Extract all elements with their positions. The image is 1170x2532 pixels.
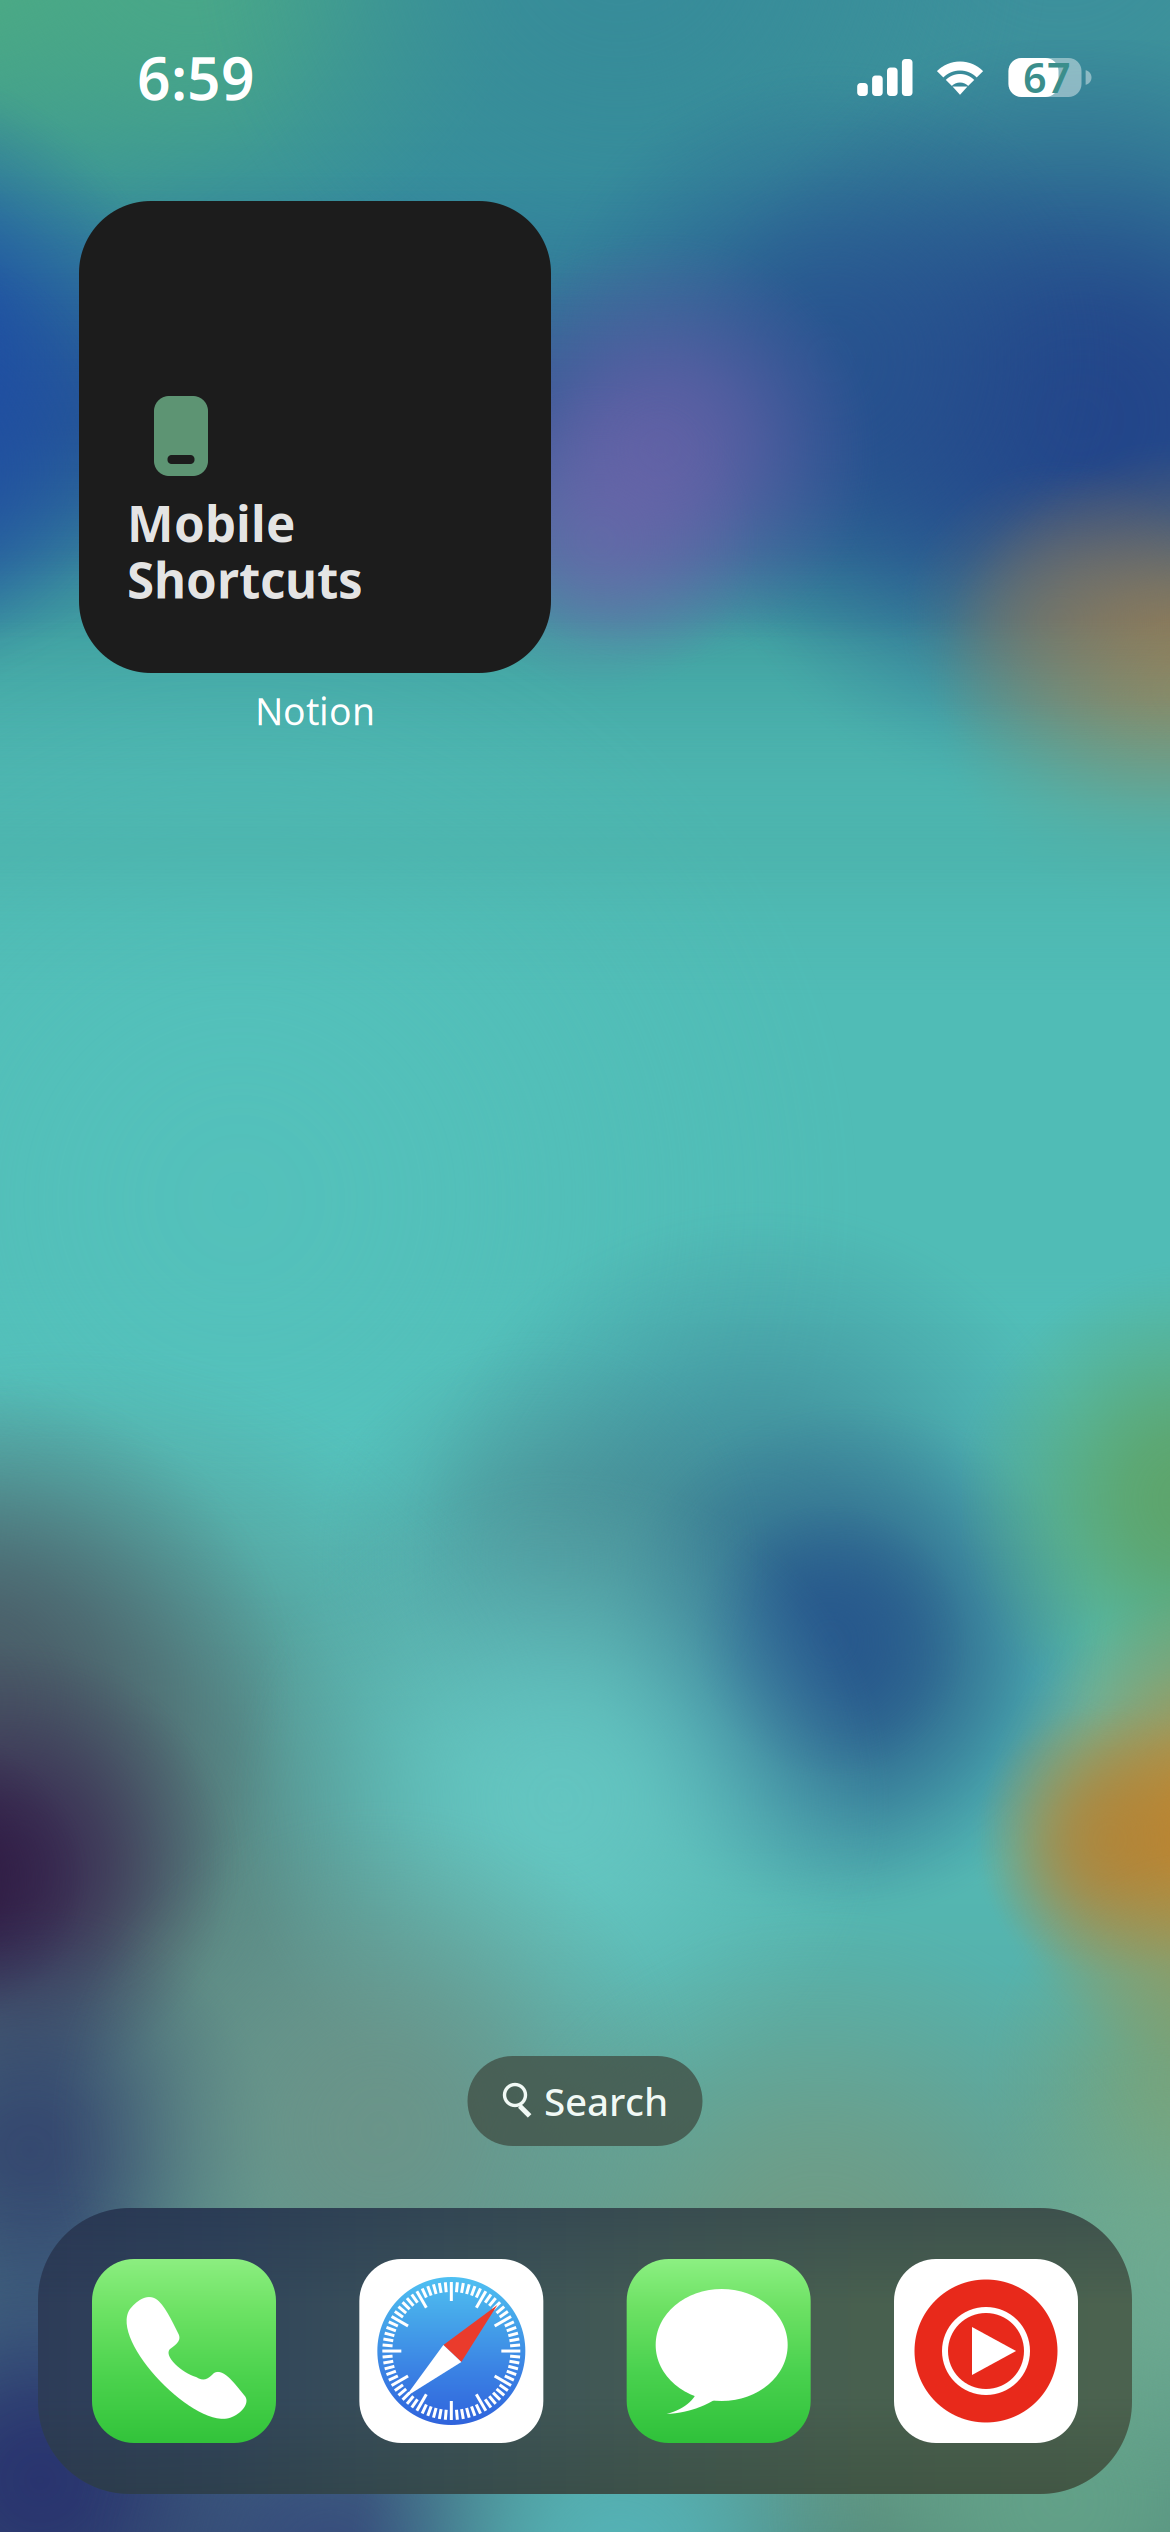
staticText: Mobile — [127, 490, 295, 555]
button[interactable]: Mobile — [79, 201, 551, 736]
staticText: Notion — [255, 686, 375, 736]
staticText: Search — [544, 2075, 668, 2127]
button[interactable]: Messages — [627, 2259, 811, 2443]
staticText: Shortcuts — [127, 546, 363, 612]
staticText: 67 — [1023, 50, 1071, 104]
button[interactable]: Safari — [359, 2259, 543, 2443]
button[interactable]: YouTube Music — [894, 2259, 1078, 2443]
staticText: 6:59 — [137, 38, 255, 116]
button[interactable]: Search — [467, 2056, 702, 2146]
button[interactable]: Phone — [92, 2259, 276, 2443]
